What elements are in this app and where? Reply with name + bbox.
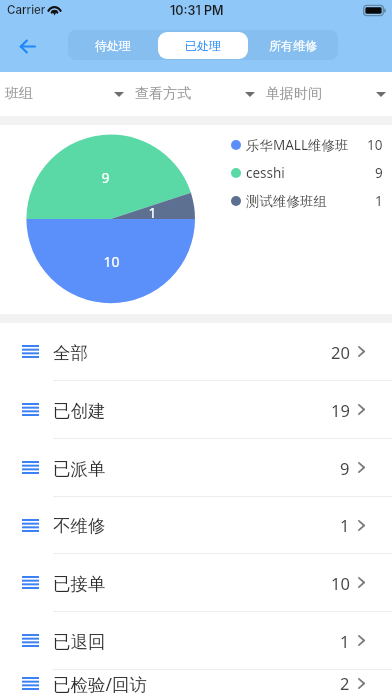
staticText: 乐华MALL维修班	[246, 136, 349, 154]
staticText: 已检验/回访	[53, 672, 148, 696]
staticText: 10:31 PM	[170, 3, 224, 18]
staticText: 1	[375, 192, 383, 210]
staticText: 待处理	[95, 38, 131, 53]
staticText: 已接单	[53, 573, 106, 595]
button[interactable]: 待处理	[68, 32, 158, 59]
staticText: 10	[367, 136, 383, 154]
staticText: 查看方式	[135, 85, 191, 103]
staticText: 已创建	[53, 400, 106, 422]
staticText: 已处理	[185, 38, 221, 53]
button[interactable]: 已派单	[0, 439, 392, 496]
button[interactable]: 全部	[0, 323, 392, 380]
staticText: 19	[331, 399, 350, 421]
button[interactable]: 不维修	[0, 497, 392, 553]
staticText: 1	[340, 514, 350, 536]
staticText: 所有维修	[269, 38, 317, 53]
button[interactable]: 所有维修	[248, 32, 338, 59]
staticText: 10	[103, 252, 120, 270]
staticText: 单据时间	[266, 85, 322, 103]
staticText: 10	[331, 572, 350, 594]
staticText: 全部	[53, 342, 88, 364]
button[interactable]: 已接单	[0, 554, 392, 611]
staticText: 测试维修班组	[246, 193, 327, 210]
staticText: 1	[340, 630, 350, 652]
button[interactable]: 查看方式	[130, 72, 261, 116]
button[interactable]: 已创建	[0, 381, 392, 438]
button[interactable]: 班组	[0, 72, 130, 116]
staticText: 班组	[5, 85, 33, 103]
staticText: 已派单	[53, 458, 106, 480]
staticText: 已退回	[53, 631, 106, 653]
button[interactable]: 已退回	[0, 612, 392, 669]
button[interactable]: 已处理	[158, 32, 248, 59]
button[interactable]: Back	[9, 29, 45, 63]
button[interactable]: 已检验/回访	[0, 670, 392, 696]
staticText: Carrier	[7, 3, 46, 17]
staticText: 9	[101, 168, 110, 186]
staticText: 1	[148, 203, 157, 221]
staticText: 20	[331, 341, 350, 363]
staticText: 9	[375, 164, 383, 182]
staticText: 9	[340, 457, 350, 479]
staticText: cesshi	[246, 164, 285, 182]
button[interactable]: 单据时间	[261, 72, 392, 116]
staticText: 2	[340, 672, 350, 694]
staticText: 不维修	[53, 515, 106, 537]
